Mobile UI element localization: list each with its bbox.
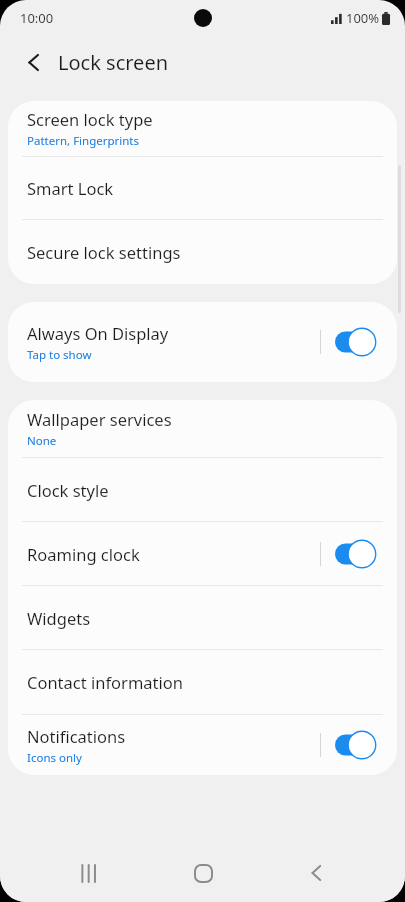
button[interactable]: Notifications: [8, 715, 397, 775]
staticText: Widgets: [27, 607, 91, 629]
staticText: 100%: [346, 9, 380, 27]
button[interactable]: Screen lock type: [8, 101, 397, 156]
button[interactable]: Roaming clock: [8, 522, 397, 585]
staticText: Pattern, Fingerprints: [27, 133, 140, 149]
button[interactable]: Recents: [62, 847, 114, 899]
staticText: Screen lock type: [27, 108, 153, 130]
button[interactable]: Smart Lock: [8, 157, 397, 219]
button[interactable]: Secure lock settings: [8, 220, 397, 284]
button[interactable]: Clock style: [8, 458, 397, 521]
staticText: None: [27, 433, 57, 449]
staticText: Lock screen: [58, 49, 169, 76]
staticText: Contact information: [27, 671, 183, 693]
staticText: Secure lock settings: [27, 241, 181, 263]
button[interactable]: Always On Display: [8, 302, 397, 382]
button[interactable]: Back: [291, 847, 343, 899]
button[interactable]: Back: [14, 42, 54, 82]
button[interactable]: Always On Display switch, on: [333, 325, 381, 359]
staticText: Notifications: [27, 725, 126, 747]
button[interactable]: Home: [177, 847, 229, 899]
staticText: Icons only: [27, 750, 82, 766]
staticText: Always On Display: [27, 322, 169, 344]
staticText: Wallpaper services: [27, 408, 172, 430]
staticText: Roaming clock: [27, 543, 140, 565]
staticText: Clock style: [27, 479, 109, 501]
button[interactable]: Roaming clock switch, on: [333, 537, 381, 571]
staticText: 10:00: [20, 9, 54, 27]
button[interactable]: Widgets: [8, 586, 397, 649]
button[interactable]: Contact information: [8, 650, 397, 714]
button[interactable]: Wallpaper services: [8, 400, 397, 457]
button[interactable]: Notifications switch, on: [333, 728, 381, 762]
staticText: Smart Lock: [27, 177, 114, 199]
staticText: Tap to show: [27, 347, 92, 363]
